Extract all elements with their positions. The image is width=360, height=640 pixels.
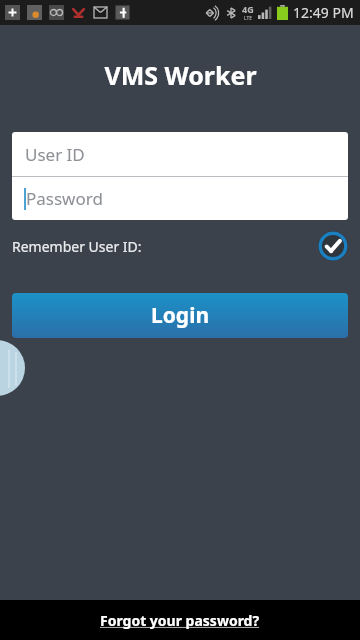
- staticText: VMS Worker: [104, 58, 257, 92]
- button[interactable]: User ID: [12, 132, 348, 176]
- staticText: LTE: [244, 15, 253, 22]
- staticText: User ID: [25, 143, 85, 166]
- staticText: Password: [26, 187, 103, 210]
- button[interactable]: Password: [12, 177, 348, 220]
- staticText: 12:49 PM: [293, 3, 354, 22]
- staticText: 4G: [242, 3, 254, 15]
- button[interactable]: Forgot your password?: [0, 600, 360, 640]
- button[interactable]: Remember User ID:: [12, 228, 348, 264]
- other: Remember User ID checkbox: [318, 231, 348, 261]
- staticText: Login: [151, 301, 210, 330]
- staticText: Remember User ID:: [12, 237, 142, 256]
- button[interactable]: Login: [12, 293, 348, 338]
- staticText: Forgot your password?: [100, 611, 260, 630]
